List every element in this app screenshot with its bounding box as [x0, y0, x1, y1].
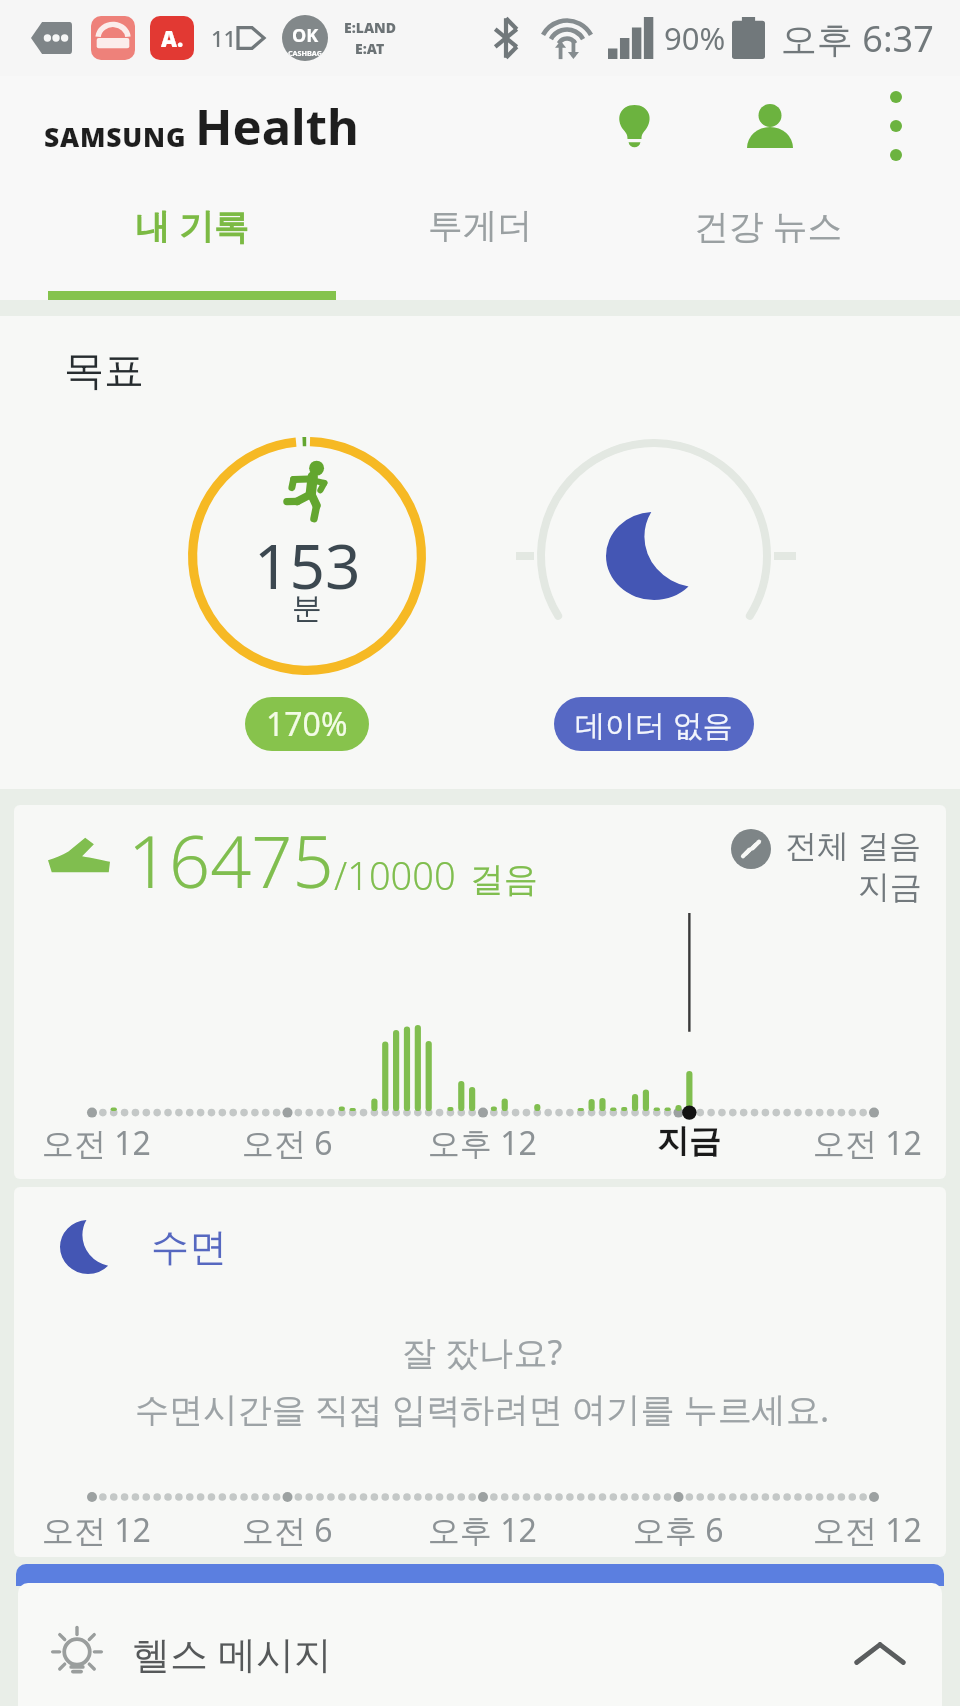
staticText: E:AT	[355, 39, 385, 58]
staticText: 16475	[128, 811, 334, 909]
staticText: 수면시간을 직접 입력하려면 여기를 누르세요.	[42, 1385, 922, 1432]
staticText: 내 기록	[135, 202, 249, 250]
staticText: E:LAND	[344, 18, 396, 37]
button[interactable]: Collapse	[846, 1619, 914, 1687]
button[interactable]: Profile	[726, 82, 814, 170]
staticText: 153	[254, 523, 361, 607]
staticText: 전체 걸음	[785, 823, 922, 867]
staticText: SAMSUNG	[44, 119, 187, 155]
staticText: 오후 12	[428, 1508, 537, 1552]
button[interactable]: 170%	[245, 697, 369, 751]
staticText: 오후 6:37	[781, 14, 934, 63]
staticText: OK	[292, 23, 319, 48]
staticText: A.	[161, 23, 184, 53]
button[interactable]: More options	[852, 82, 940, 170]
staticText: 오전 6	[242, 1508, 333, 1552]
staticText: 오후 6	[633, 1508, 724, 1552]
staticText: 걸음	[470, 858, 538, 901]
button[interactable]: 수면	[14, 1187, 946, 1557]
button[interactable]: Tips	[590, 82, 678, 170]
staticText: 목표	[64, 345, 144, 395]
staticText: Health	[195, 93, 359, 160]
staticText: 오전 12	[813, 1508, 922, 1552]
staticText: 11	[211, 23, 237, 53]
button[interactable]: 16475	[14, 805, 946, 1179]
staticText: CASHBAG	[288, 48, 322, 58]
staticText: 오전 12	[42, 1121, 151, 1165]
staticText: 지금	[858, 867, 922, 907]
staticText: 오전 12	[42, 1508, 151, 1552]
button[interactable]: 데이터 없음	[554, 697, 754, 751]
staticText: 오후 12	[428, 1121, 537, 1165]
staticText: 90%	[664, 17, 726, 59]
staticText: 잘 잤나요?	[42, 1328, 922, 1375]
button[interactable]: 헬스 메시지	[18, 1583, 942, 1706]
button[interactable]: 투게더	[336, 176, 624, 300]
staticText: 건강 뉴스	[694, 202, 843, 250]
staticText: 오전 6	[242, 1121, 333, 1165]
staticText: 170%	[266, 702, 348, 746]
staticText: 분	[292, 589, 322, 627]
staticText: 수면	[151, 1223, 227, 1271]
staticText: 오전 12	[813, 1121, 922, 1165]
staticText: 헬스 메시지	[132, 1627, 332, 1679]
button[interactable]: 내 기록	[48, 176, 336, 300]
staticText: 투게더	[428, 204, 533, 248]
staticText: 지금	[657, 1121, 721, 1161]
button[interactable]: 건강 뉴스	[624, 176, 912, 300]
staticText: /10000	[334, 849, 456, 901]
staticText: 데이터 없음	[575, 704, 733, 745]
